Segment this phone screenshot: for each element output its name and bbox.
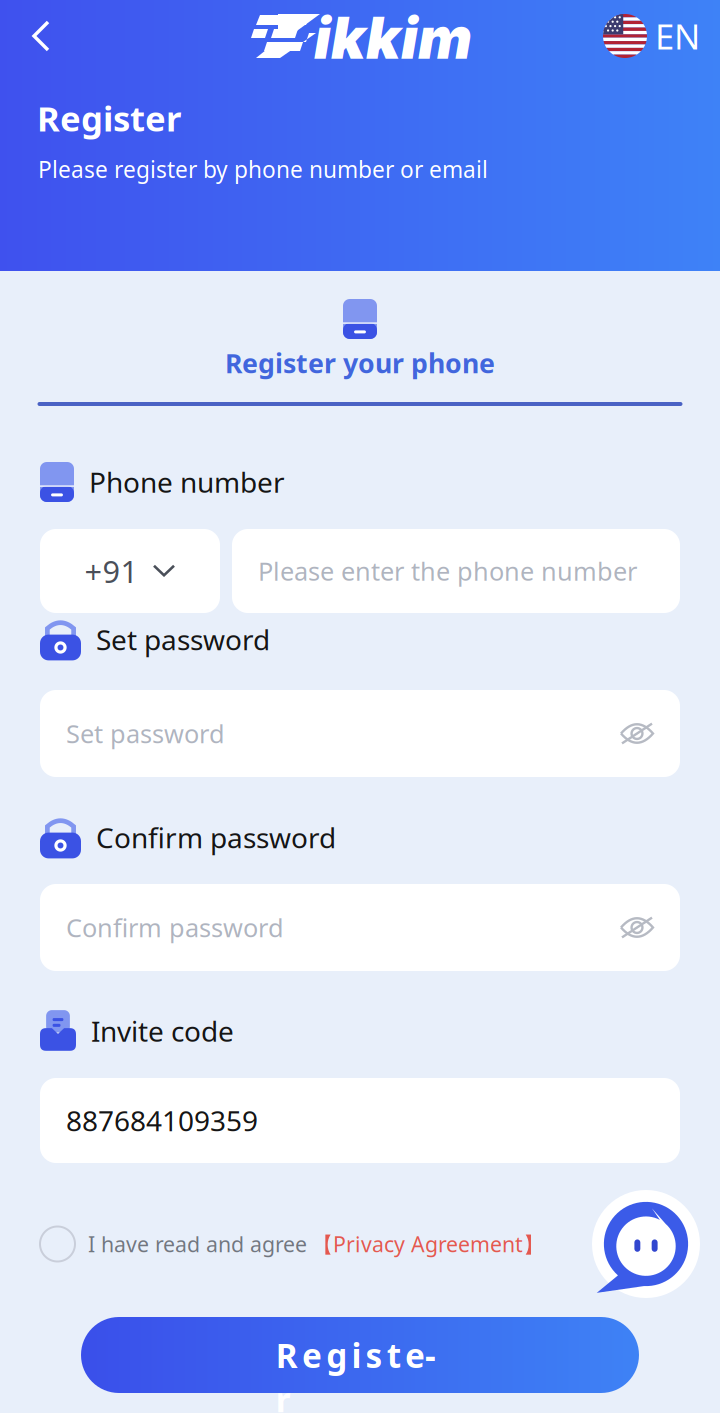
button[interactable]: Agree to terms <box>40 1189 312 1299</box>
staticText: Register <box>276 1333 444 1377</box>
button[interactable]: Back <box>0 4 72 68</box>
staticText: Register <box>37 95 181 141</box>
staticText: EN <box>655 13 700 59</box>
button[interactable]: Set password <box>40 690 680 777</box>
staticText: Please enter the phone number <box>258 554 637 588</box>
staticText: I have read and agree <box>88 1230 307 1258</box>
button[interactable]: Register <box>81 1317 639 1393</box>
button[interactable]: Confirm password <box>40 884 680 971</box>
staticText: 887684109359 <box>66 1102 258 1139</box>
staticText: Invite code <box>91 1012 234 1050</box>
staticText: Confirm password <box>66 911 284 944</box>
button[interactable]: Customer support <box>592 1190 700 1298</box>
staticText: ikkim <box>314 3 472 73</box>
button[interactable]: 【Privacy Agreement】 <box>312 1189 544 1299</box>
staticText: Set password <box>66 717 225 750</box>
staticText: Confirm password <box>96 819 336 856</box>
staticText: Set password <box>96 621 270 658</box>
staticText: 【Privacy Agreement】 <box>312 1230 544 1258</box>
staticText: Please register by phone number or email <box>38 154 488 184</box>
button[interactable]: Language: English <box>603 3 720 69</box>
staticText: Phone number <box>89 463 285 501</box>
staticText: +91 <box>84 551 138 591</box>
staticText: Register your phone <box>225 345 495 381</box>
button[interactable]: Phone number field <box>232 529 680 613</box>
button[interactable]: Invite code field <box>40 1078 680 1163</box>
button[interactable]: Country code +91 <box>40 529 220 613</box>
